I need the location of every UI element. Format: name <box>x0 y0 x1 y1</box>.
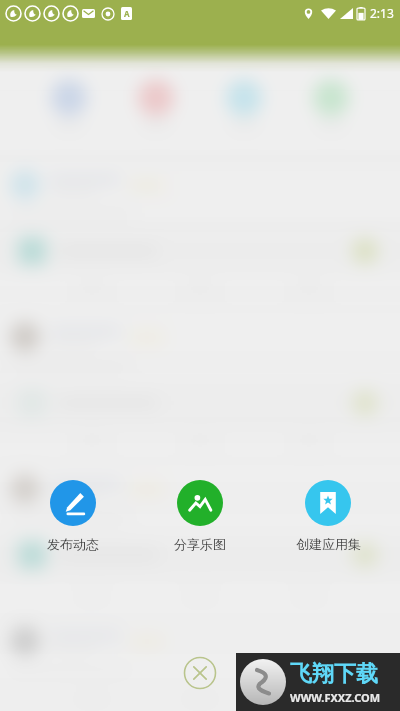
staticText: 飞翔下载 <box>290 660 378 688</box>
staticText: 发布动态 <box>47 536 99 552</box>
staticText: 分享乐图 <box>174 536 226 552</box>
button[interactable]: 关闭 <box>178 651 222 695</box>
staticText: 2:13 <box>370 5 394 21</box>
button[interactable]: 创建应用集 <box>273 478 383 554</box>
staticText: 创建应用集 <box>296 536 361 552</box>
button[interactable]: 分享乐图 <box>145 478 255 554</box>
staticText: WWW.FXXZ.COM <box>290 690 381 705</box>
button[interactable]: 发布动态 <box>18 478 128 554</box>
staticText: A <box>124 8 130 19</box>
